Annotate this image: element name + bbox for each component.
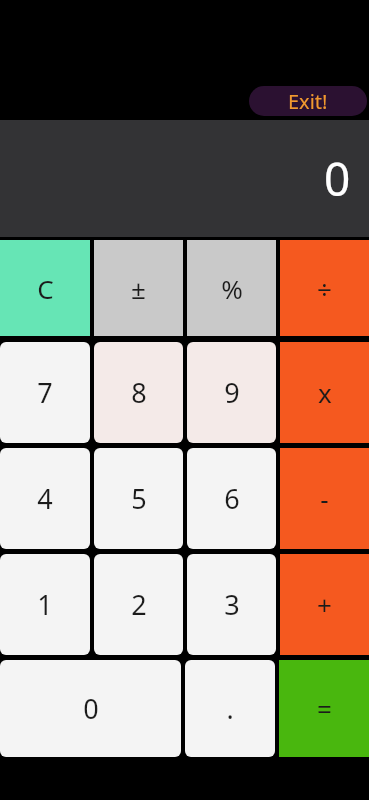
button[interactable]: ÷ [280, 240, 369, 336]
staticText: 9 [224, 374, 240, 411]
button[interactable]: 3 [187, 554, 276, 655]
button[interactable]: 7 [0, 342, 90, 443]
staticText: . [226, 690, 234, 727]
staticText: 1 [37, 586, 53, 623]
button[interactable]: 9 [187, 342, 276, 443]
button[interactable]: 0 [0, 660, 181, 757]
button[interactable]: % [187, 240, 276, 336]
button[interactable]: - [280, 448, 369, 549]
staticText: = [317, 691, 332, 726]
button[interactable]: + [280, 554, 369, 655]
button[interactable]: 4 [0, 448, 90, 549]
staticText: + [317, 587, 332, 622]
button[interactable]: 2 [94, 554, 183, 655]
button[interactable]: ± [94, 240, 183, 336]
button[interactable]: x [280, 342, 369, 443]
staticText: 7 [37, 374, 53, 411]
staticText: - [320, 481, 329, 516]
staticText: 3 [224, 586, 240, 623]
staticText: ± [131, 271, 146, 306]
button[interactable]: 5 [94, 448, 183, 549]
staticText: 6 [224, 480, 240, 517]
staticText: 8 [131, 374, 147, 411]
button[interactable]: = [279, 660, 369, 757]
staticText: C [37, 271, 54, 306]
button[interactable]: . [185, 660, 275, 757]
button[interactable]: 6 [187, 448, 276, 549]
button[interactable]: 1 [0, 554, 90, 655]
staticText: x [318, 375, 332, 410]
staticText: 0 [83, 690, 99, 727]
staticText: 5 [131, 480, 147, 517]
button[interactable]: Exit! [249, 86, 367, 116]
staticText: % [221, 271, 243, 306]
staticText: 0 [324, 147, 351, 210]
button[interactable]: C [0, 240, 90, 336]
staticText: 4 [37, 480, 53, 517]
staticText: 2 [131, 586, 147, 623]
staticText: ÷ [317, 271, 332, 306]
button[interactable]: 8 [94, 342, 183, 443]
staticText: Exit! [288, 88, 328, 115]
